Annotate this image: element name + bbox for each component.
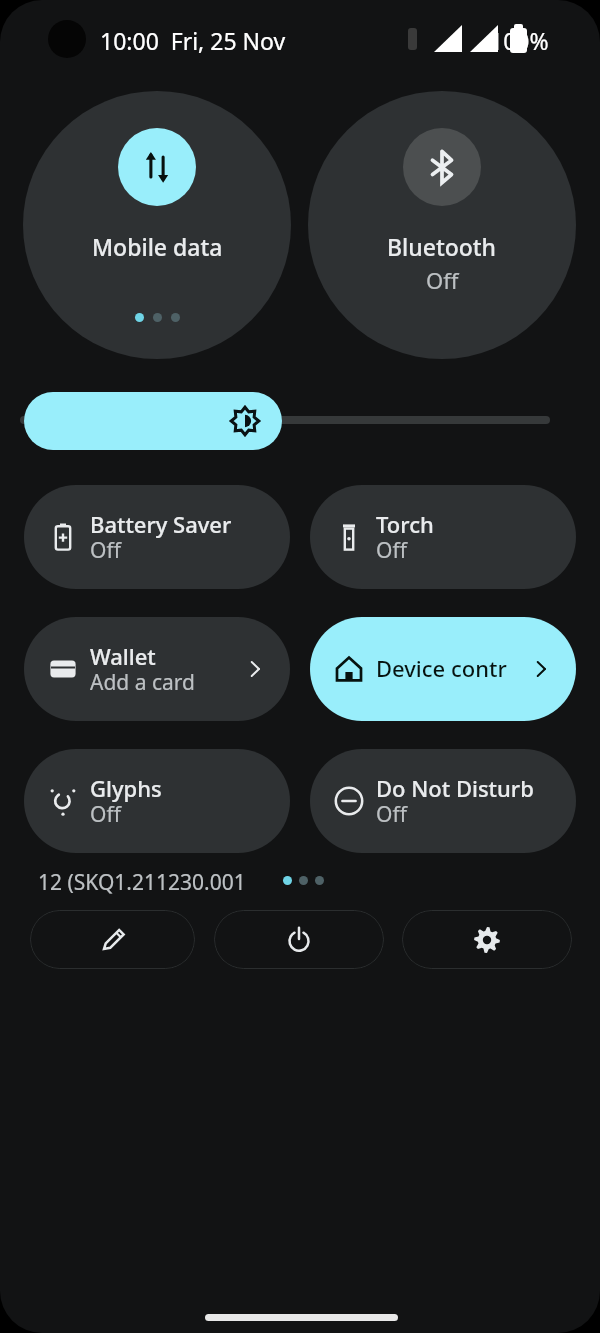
staticText: Do Not Disturb [376,773,534,803]
staticText: 100% [490,25,549,56]
button[interactable]: Brightness [24,392,282,450]
staticText: Torch [376,509,434,539]
button[interactable]: Glyphs [24,749,290,853]
staticText: Wallet [90,641,156,671]
staticText: Off [376,800,407,829]
button[interactable]: Bluetooth [308,91,576,359]
button[interactable]: Settings [402,910,572,969]
button[interactable]: Do Not Disturb [310,749,576,853]
staticText: Device contr [376,653,507,683]
staticText: Glyphs [90,773,162,803]
staticText: Off [426,265,459,295]
button[interactable]: Mobile data [23,91,291,359]
button[interactable]: Device contr [310,617,576,721]
staticText: Bluetooth [387,231,497,262]
staticText: Off [376,536,407,565]
staticText: Off [90,536,121,565]
staticText: 10:00 Fri, 25 Nov [100,25,286,56]
staticText: 12 (SKQ1.211230.001 [38,868,278,897]
button[interactable]: Power [214,910,384,969]
button[interactable]: Battery Saver [24,485,290,589]
staticText: Battery Saver [90,509,232,539]
staticText: Add a card [90,668,195,697]
staticText: Off [90,800,121,829]
button[interactable]: Torch [310,485,576,589]
staticText: Mobile data [92,231,223,262]
button[interactable]: Wallet [24,617,290,721]
button[interactable]: Edit [30,910,195,969]
